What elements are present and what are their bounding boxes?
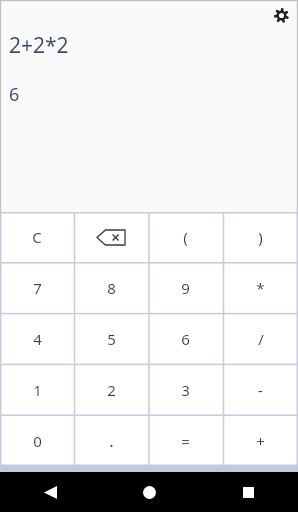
button[interactable]: + — [223, 415, 298, 466]
button[interactable]: . — [74, 415, 148, 466]
staticText: 7 — [33, 278, 42, 298]
staticText: 6 — [181, 329, 190, 349]
staticText: ) — [258, 227, 263, 247]
staticText: . — [109, 429, 114, 452]
button[interactable]: Settings — [270, 4, 292, 26]
button[interactable]: 6 — [148, 313, 223, 364]
staticText: - — [258, 380, 263, 400]
staticText: + — [256, 431, 265, 451]
button[interactable]: 9 — [148, 262, 223, 313]
staticText: 3 — [181, 380, 190, 400]
staticText: 8 — [107, 278, 116, 298]
button[interactable]: 4 — [0, 313, 74, 364]
button[interactable]: 8 — [74, 262, 148, 313]
staticText: 2+2*2 — [9, 31, 69, 60]
staticText: 6 — [9, 82, 20, 107]
button[interactable]: ) — [223, 212, 298, 262]
staticText: 1 — [33, 380, 42, 400]
staticText: ( — [183, 227, 188, 247]
staticText: C — [32, 227, 42, 247]
button[interactable]: ( — [148, 212, 223, 262]
button[interactable]: 1 — [0, 364, 74, 415]
button[interactable]: C — [0, 212, 74, 262]
button[interactable]: Backspace — [74, 212, 148, 262]
button[interactable]: 5 — [74, 313, 148, 364]
staticText: 4 — [33, 329, 42, 349]
button[interactable]: / — [223, 313, 298, 364]
button[interactable]: 7 — [0, 262, 74, 313]
staticText: 5 — [107, 329, 116, 349]
button[interactable]: * — [223, 262, 298, 313]
button[interactable]: 0 — [0, 415, 74, 466]
staticText: / — [258, 329, 264, 349]
button[interactable]: = — [148, 415, 223, 466]
button[interactable]: Recent apps — [199, 472, 298, 512]
button[interactable]: - — [223, 364, 298, 415]
button[interactable]: 2 — [74, 364, 148, 415]
staticText: 0 — [33, 431, 42, 451]
staticText: * — [256, 278, 265, 298]
button[interactable]: Home — [100, 472, 199, 512]
button[interactable]: Back — [0, 472, 100, 512]
button[interactable]: 3 — [148, 364, 223, 415]
staticText: 2 — [107, 380, 116, 400]
staticText: 9 — [181, 278, 190, 298]
staticText: = — [181, 431, 190, 451]
